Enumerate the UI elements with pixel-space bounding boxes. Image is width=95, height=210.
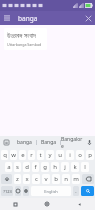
staticText: g bbox=[43, 163, 47, 171]
staticText: z bbox=[16, 175, 19, 183]
button[interactable]: s bbox=[14, 162, 21, 172]
button[interactable]: Banga bbox=[37, 136, 60, 149]
button[interactable]: p bbox=[86, 150, 94, 160]
button[interactable]: banga bbox=[12, 136, 36, 149]
button[interactable]: i bbox=[66, 150, 74, 160]
button[interactable]: b bbox=[52, 174, 60, 184]
button[interactable]: h bbox=[51, 162, 59, 172]
staticText: s bbox=[16, 163, 19, 171]
button[interactable]: e bbox=[19, 150, 26, 160]
button[interactable]: Shift bbox=[1, 174, 12, 184]
button[interactable]: Settings bbox=[23, 186, 29, 196]
button[interactable]: a bbox=[5, 162, 12, 172]
staticText: i bbox=[69, 151, 71, 159]
button[interactable]: English bbox=[31, 186, 71, 196]
staticText: English bbox=[44, 189, 58, 194]
staticText: m bbox=[73, 175, 79, 183]
button[interactable]: g bbox=[41, 162, 49, 172]
button[interactable]: Back bbox=[63, 198, 95, 210]
staticText: banga bbox=[17, 139, 32, 146]
staticText: ?123 bbox=[3, 189, 12, 194]
button[interactable]: m bbox=[72, 174, 80, 184]
button[interactable]: x bbox=[23, 174, 30, 184]
button[interactable]: Bangalore bbox=[61, 136, 84, 149]
staticText: t bbox=[39, 151, 42, 159]
staticText: h bbox=[53, 163, 57, 171]
staticText: উত্তরবঙ্গ সংবাদ bbox=[7, 31, 36, 40]
button[interactable]: Backspace bbox=[82, 174, 94, 184]
button[interactable]: Voice input bbox=[84, 136, 95, 149]
button[interactable]: Clear bbox=[81, 11, 95, 25]
staticText: u bbox=[58, 151, 62, 159]
button[interactable]: f bbox=[32, 162, 39, 172]
staticText: n bbox=[64, 175, 68, 183]
button[interactable]: j bbox=[61, 162, 69, 172]
staticText: p bbox=[88, 151, 92, 159]
button[interactable]: o bbox=[76, 150, 84, 160]
button[interactable]: Clipboard bbox=[0, 136, 12, 149]
staticText: c bbox=[35, 175, 38, 183]
staticText: banga bbox=[18, 14, 81, 23]
staticText: v bbox=[44, 175, 48, 183]
button[interactable]: t bbox=[37, 150, 44, 160]
staticText: Banga bbox=[41, 139, 57, 146]
staticText: x bbox=[25, 175, 29, 183]
staticText: k bbox=[73, 163, 77, 171]
button[interactable]: d bbox=[23, 162, 30, 172]
button[interactable]: Recents bbox=[0, 198, 31, 210]
button[interactable]: z bbox=[14, 174, 21, 184]
button[interactable]: . bbox=[73, 186, 79, 196]
button[interactable]: u bbox=[56, 150, 64, 160]
button[interactable]: k bbox=[71, 162, 79, 172]
button[interactable]: উত্তরবঙ্গ সংবাদ bbox=[4, 28, 47, 50]
button[interactable]: r bbox=[28, 150, 35, 160]
button[interactable]: Search bbox=[81, 186, 94, 196]
button[interactable]: n bbox=[62, 174, 70, 184]
staticText: a bbox=[7, 163, 11, 171]
button[interactable]: q bbox=[1, 150, 8, 160]
button[interactable]: l bbox=[81, 162, 89, 172]
staticText: Uttarbanga Sambad bbox=[7, 42, 42, 47]
button[interactable]: c bbox=[32, 174, 40, 184]
button[interactable]: Menu bbox=[0, 11, 14, 25]
button[interactable]: ?123 bbox=[1, 186, 13, 196]
staticText: q bbox=[3, 151, 7, 159]
staticText: r bbox=[30, 151, 33, 159]
button[interactable]: w bbox=[10, 150, 17, 160]
button[interactable]: Emoji bbox=[15, 186, 21, 196]
button[interactable]: y bbox=[46, 150, 54, 160]
staticText: e bbox=[21, 151, 25, 159]
button[interactable]: v bbox=[42, 174, 50, 184]
staticText: Bangalore bbox=[61, 136, 84, 149]
staticText: b bbox=[54, 175, 58, 183]
staticText: j bbox=[64, 163, 66, 171]
button[interactable]: Home bbox=[31, 198, 63, 210]
staticText: d bbox=[25, 163, 29, 171]
staticText: y bbox=[48, 151, 52, 159]
staticText: l bbox=[84, 163, 86, 171]
staticText: w bbox=[11, 151, 16, 159]
staticText: f bbox=[34, 163, 37, 171]
staticText: . bbox=[75, 188, 77, 195]
staticText: o bbox=[78, 151, 82, 159]
